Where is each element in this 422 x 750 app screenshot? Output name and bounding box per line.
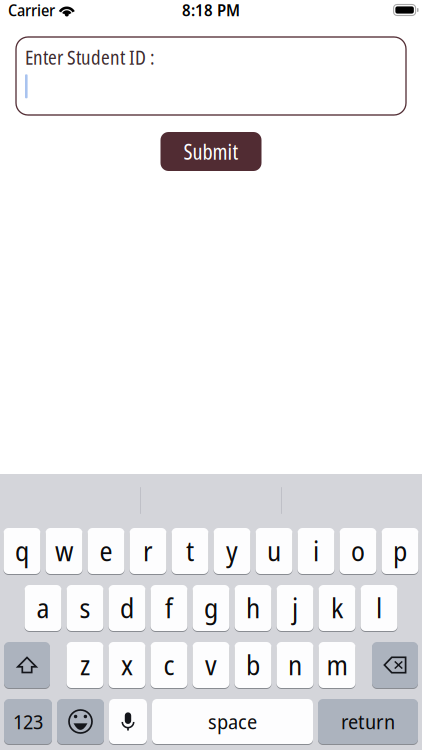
staticText: s xyxy=(79,590,90,626)
staticText: y xyxy=(226,533,238,569)
button[interactable]: i xyxy=(297,528,334,575)
button[interactable]: w xyxy=(45,528,82,575)
staticText: u xyxy=(267,533,281,569)
staticText: return xyxy=(341,708,395,735)
button[interactable]: x xyxy=(108,642,145,689)
staticText: Submit xyxy=(183,137,238,166)
button[interactable]: t xyxy=(171,528,208,575)
staticText: d xyxy=(120,590,134,626)
button[interactable]: r xyxy=(129,528,166,575)
button[interactable]: Shift xyxy=(4,642,50,689)
staticText: i xyxy=(313,533,319,569)
staticText: j xyxy=(292,590,298,626)
staticText: l xyxy=(376,590,382,626)
button[interactable]: Dictate xyxy=(109,699,147,745)
staticText: 123 xyxy=(13,708,43,735)
button[interactable]: a xyxy=(24,585,61,632)
button[interactable]: 123 xyxy=(4,699,52,745)
button[interactable]: j xyxy=(276,585,313,632)
button[interactable]: y xyxy=(213,528,250,575)
staticText: z xyxy=(80,647,90,683)
staticText: a xyxy=(36,590,49,626)
staticText: t xyxy=(186,533,194,569)
button[interactable]: Emoji xyxy=(57,699,104,745)
staticText: 8:18 PM xyxy=(182,0,240,21)
staticText: Enter Student ID : xyxy=(25,44,155,70)
button[interactable]: s xyxy=(66,585,103,632)
staticText: p xyxy=(393,533,407,569)
staticText: x xyxy=(121,647,133,683)
button[interactable]: p xyxy=(381,528,418,575)
staticText: b xyxy=(246,647,260,683)
button[interactable]: m xyxy=(318,642,355,689)
staticText: f xyxy=(165,590,173,626)
staticText: k xyxy=(331,590,343,626)
staticText: space xyxy=(208,708,257,735)
button[interactable]: c xyxy=(150,642,187,689)
staticText: v xyxy=(205,647,217,683)
button[interactable]: Delete xyxy=(372,642,418,689)
button[interactable]: d xyxy=(108,585,145,632)
staticText: e xyxy=(99,533,112,569)
button[interactable]: space xyxy=(152,699,313,745)
button[interactable]: b xyxy=(234,642,271,689)
staticText: c xyxy=(163,647,174,683)
button[interactable]: z xyxy=(66,642,103,689)
button[interactable]: Submit xyxy=(160,132,261,171)
staticText: w xyxy=(55,533,73,569)
staticText: q xyxy=(15,533,29,569)
button[interactable]: h xyxy=(234,585,271,632)
button[interactable]: l xyxy=(360,585,397,632)
button[interactable]: k xyxy=(318,585,355,632)
button[interactable]: q xyxy=(3,528,40,575)
button[interactable]: u xyxy=(255,528,292,575)
staticText: h xyxy=(246,590,260,626)
button[interactable]: n xyxy=(276,642,313,689)
staticText: o xyxy=(351,533,365,569)
button[interactable]: e xyxy=(87,528,124,575)
button[interactable]: f xyxy=(150,585,187,632)
staticText: Carrier xyxy=(8,0,55,21)
staticText: r xyxy=(143,533,153,569)
button[interactable]: v xyxy=(192,642,229,689)
button[interactable]: return xyxy=(318,699,418,745)
button[interactable]: o xyxy=(339,528,376,575)
button[interactable]: g xyxy=(192,585,229,632)
staticText: n xyxy=(288,647,302,683)
staticText: g xyxy=(204,590,218,626)
staticText: m xyxy=(326,647,347,683)
